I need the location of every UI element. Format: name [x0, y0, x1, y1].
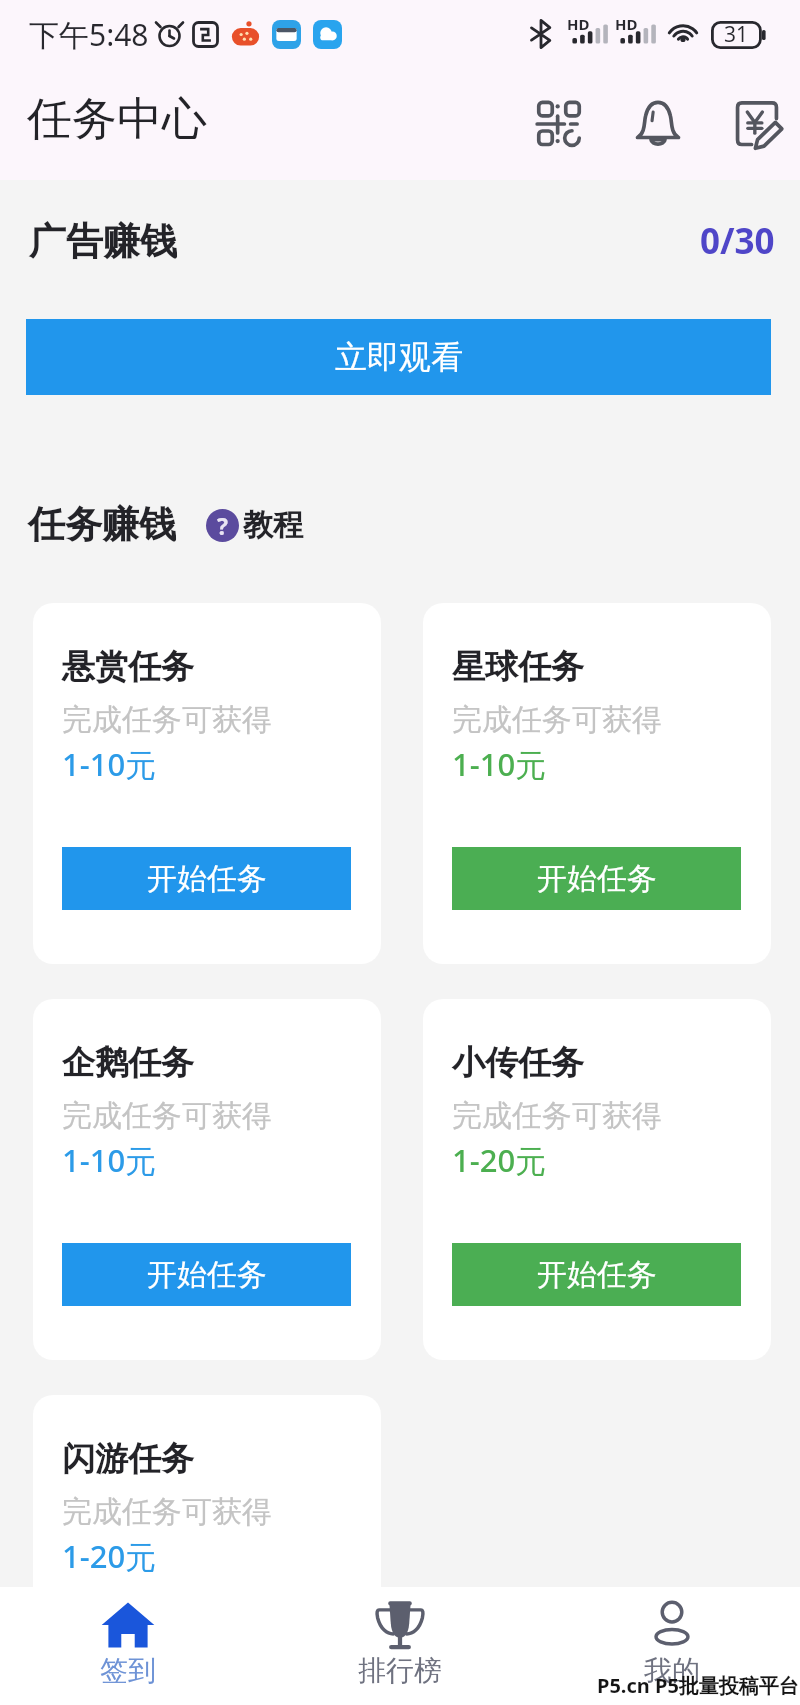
staticText: 签到	[100, 1653, 156, 1688]
staticText: 1-10元	[62, 1139, 157, 1181]
button[interactable]: 记账	[726, 93, 788, 155]
staticText: 悬赏任务	[62, 646, 194, 688]
button[interactable]: 立即观看	[26, 319, 771, 395]
staticText: 我的	[644, 1653, 700, 1688]
button[interactable]: ?	[206, 506, 303, 544]
staticText: 开始任务	[537, 860, 657, 898]
staticText: 任务赚钱	[28, 501, 176, 548]
staticText: 广告赚钱	[29, 218, 177, 265]
staticText: 完成任务可获得	[62, 1097, 272, 1135]
staticText: 完成任务可获得	[452, 1097, 662, 1135]
staticText: 31	[724, 20, 749, 49]
staticText: 下午5:48	[29, 14, 149, 55]
staticText: 开始任务	[147, 860, 267, 898]
staticText: 开始任务	[147, 1652, 267, 1690]
staticText: 0/30	[700, 217, 775, 265]
staticText: 任务中心	[27, 91, 207, 148]
staticText: 开始任务	[537, 1256, 657, 1294]
staticText: 企鹅任务	[62, 1042, 194, 1084]
staticText: 立即观看	[335, 337, 463, 377]
staticText: 开始任务	[147, 1256, 267, 1294]
button[interactable]: 星球任务	[423, 603, 771, 964]
staticText: 完成任务可获得	[452, 701, 662, 739]
staticText: 教程	[243, 506, 303, 544]
staticText: 1-10元	[62, 743, 157, 785]
button[interactable]: 闪游任务	[33, 1395, 381, 1705]
staticText: 1-20元	[452, 1139, 547, 1181]
staticText: 闪游任务	[62, 1438, 194, 1480]
staticText: P5.cn P5批量投稿平台	[597, 1672, 799, 1699]
button[interactable]: 排行榜	[266, 1587, 533, 1705]
button[interactable]: 签到	[0, 1587, 261, 1705]
button[interactable]: 消息通知	[627, 93, 689, 155]
staticText: 1-10元	[452, 743, 547, 785]
staticText: HD	[615, 14, 638, 34]
button[interactable]: 开始任务	[452, 847, 741, 910]
staticText: 星球任务	[452, 646, 584, 688]
staticText: 小传任务	[452, 1042, 584, 1084]
staticText: 完成任务可获得	[62, 701, 272, 739]
button[interactable]: 扫一扫	[528, 93, 590, 155]
button[interactable]: 开始任务	[62, 847, 351, 910]
staticText: 排行榜	[358, 1653, 442, 1688]
button[interactable]: 我的	[538, 1587, 800, 1705]
button[interactable]: 开始任务	[62, 1639, 351, 1702]
button[interactable]: 开始任务	[452, 1243, 741, 1306]
staticText: 1-20元	[62, 1535, 157, 1577]
button[interactable]: 企鹅任务	[33, 999, 381, 1360]
staticText: ?	[217, 510, 228, 541]
staticText: 完成任务可获得	[62, 1493, 272, 1531]
button[interactable]: 小传任务	[423, 999, 771, 1360]
button[interactable]: 悬赏任务	[33, 603, 381, 964]
staticText: HD	[567, 14, 590, 34]
button[interactable]: 开始任务	[62, 1243, 351, 1306]
